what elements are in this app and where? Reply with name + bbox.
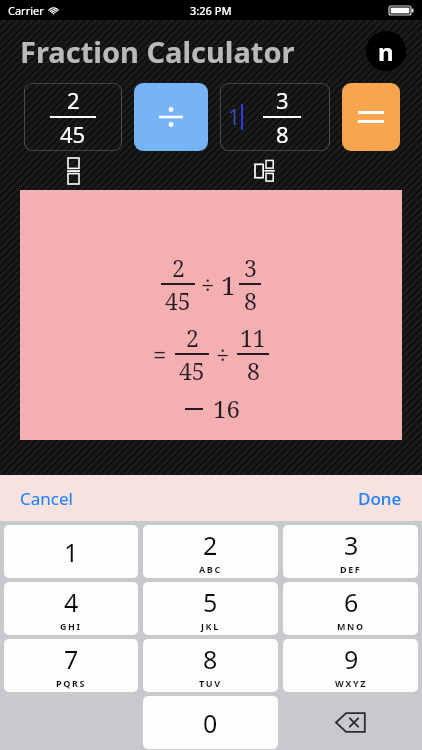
staticText: MNO (337, 620, 365, 632)
staticText: Carrier (8, 3, 44, 18)
staticText: 5 (203, 585, 218, 619)
button[interactable]: Simple fraction mode (61, 156, 85, 186)
staticText: 45 (60, 119, 86, 149)
staticText: Done (358, 487, 402, 510)
button[interactable]: 0 (143, 696, 278, 749)
staticText: JKL (201, 620, 220, 632)
staticText: 11 (240, 322, 266, 353)
staticText: 2 (67, 85, 80, 115)
staticText: 3 (276, 85, 289, 115)
button[interactable]: 8 (143, 639, 278, 692)
staticText: 2 (172, 252, 185, 283)
staticText: 4 (64, 585, 79, 619)
staticText: 16 (213, 392, 240, 425)
button[interactable]: 4 (4, 582, 138, 635)
staticText: 6 (344, 585, 359, 619)
staticText: Cancel (20, 487, 73, 510)
button[interactable]: 1 (220, 83, 330, 151)
staticText: 1 (64, 535, 79, 569)
staticText: 45 (165, 285, 191, 316)
button[interactable]: 2 (24, 83, 122, 151)
button[interactable]: 6 (283, 582, 418, 635)
staticText: 9 (344, 642, 359, 676)
staticText: 0 (203, 706, 218, 740)
staticText: 45 (179, 355, 205, 386)
button[interactable]: Backspace (283, 696, 418, 749)
staticText: GHI (60, 620, 82, 632)
staticText: 3 (344, 528, 359, 562)
button[interactable]: Divide (134, 83, 208, 151)
staticText: 1 (221, 267, 236, 302)
button[interactable]: Mixed number mode (252, 156, 280, 186)
staticText: 8 (247, 355, 260, 386)
button[interactable]: 5 (143, 582, 278, 635)
button[interactable]: 2 (20, 190, 402, 440)
button[interactable]: 7 (4, 639, 138, 692)
staticText: TUV (199, 677, 222, 689)
staticText: Fraction Calculator (20, 32, 295, 71)
staticText: ABC (199, 563, 222, 575)
staticText: 8 (276, 119, 289, 149)
staticText: 7 (64, 642, 79, 676)
staticText: 2 (186, 322, 199, 353)
staticText: = (153, 338, 167, 371)
staticText: PQRS (56, 677, 86, 689)
staticText: n (378, 35, 394, 68)
staticText: 8 (203, 642, 218, 676)
button[interactable]: Done (350, 483, 410, 514)
staticText: ÷ (201, 268, 215, 301)
button[interactable]: Cancel (12, 483, 81, 514)
staticText: 3:26 PM (190, 3, 232, 18)
button[interactable]: App logo (366, 31, 406, 71)
staticText: 8 (244, 285, 257, 316)
staticText: ÷ (216, 338, 230, 371)
button[interactable]: 9 (283, 639, 418, 692)
staticText: 1 (228, 103, 241, 132)
staticText: DEF (340, 563, 362, 575)
staticText: 2 (203, 528, 218, 562)
button[interactable]: Equals (342, 83, 400, 151)
staticText: 3 (244, 252, 257, 283)
button[interactable]: 3 (283, 525, 418, 578)
button[interactable]: 2 (143, 525, 278, 578)
staticText: WXYZ (335, 677, 367, 689)
button[interactable]: 1 (4, 525, 138, 578)
